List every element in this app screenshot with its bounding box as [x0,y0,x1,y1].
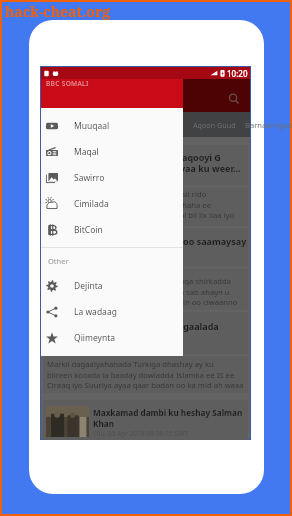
staticText: Soomaaliya oo ka hadashay Waqooyi G [47,151,221,163]
staticText: 10:20 [227,68,248,79]
staticText: Markii dagaalyahanada Turkiga dhashay ay… [47,359,214,369]
button[interactable]: Muuqaal [41,113,183,139]
button[interactable]: Aqoon Guud [186,112,243,137]
staticText: Barnaamijyada [245,120,292,130]
staticText: ciidamada qaranka ee loo dhiibo mushaha … [47,200,211,210]
staticText: Dejinta [74,280,103,292]
button[interactable]: BitCoin [41,217,183,243]
staticText: Dad badan oo ku xanniban magaalada [47,320,219,332]
staticText: Cimilada [74,198,109,210]
staticText: Maxkamad dambi ku heshay Salman [93,407,243,418]
staticText: Hay'adda la dagaalanka musuqmaasuqa shir… [47,276,232,286]
staticText: BitCoin [74,224,103,236]
staticText: La wadaag [74,306,117,318]
staticText: Dowladda oo sheegtay in ay amar ku sii r… [47,189,207,199]
button[interactable]: Caalamka [129,112,186,137]
button[interactable]: Maxkamad dambi ku heshay Salman [43,400,248,440]
staticText: Maqal [74,146,99,158]
staticText: Muuqaal [74,120,110,132]
button[interactable]: Hay'adda la dagaalanka musuqmaasuqa shir… [43,269,248,310]
button[interactable]: Dad badan oo ku xanniban magaalada [43,312,248,354]
staticText: hack-cheat.org [5,2,111,21]
button[interactable]: Markii dagaalyahanada Turkiga dhashay ay… [43,356,248,393]
staticText: Wararka [86,120,116,130]
staticText: albeed: Waa maxay xataallo ayaa ku weer… [47,162,241,174]
button[interactable]: Barnaamijyada [243,112,292,137]
button[interactable]: Maqal [41,139,183,165]
button[interactable]: Soomaaliya oo ka hadashay Waqooyi G [43,145,248,185]
button[interactable]: Search [223,88,245,110]
button[interactable]: Cimilada [41,191,183,217]
button[interactable]: Xaalad degdeg ah oo dhacday oo saamaysay [43,228,248,266]
button[interactable]: Sawirro [41,165,183,191]
button[interactable]: Dejinta [41,273,183,299]
button[interactable]: Wararka [72,112,129,137]
staticText: Qiimeynta [74,332,116,344]
button[interactable]: La wadaag [41,299,183,325]
staticText: Khan [93,418,114,429]
staticText: Thu, 05 Apr 2018 09:38:15 GMT [93,429,189,438]
staticText: Aqoon Guud [193,120,236,130]
staticText: biireen kooxda la baxday dowladda Islamk… [47,370,235,380]
staticText: muddo dheeraad ah ee ay gaaraan hal bil … [47,210,235,220]
staticText: dhaqaalaha dalka qaarkood ay leeyihiin o… [47,297,238,307]
staticText: Other [48,256,69,266]
button[interactable]: Qiimeynta [41,325,183,351]
staticText: Xaalad degdeg ah oo dhacday oo saamaysay [47,235,247,247]
staticText: Sawirro [74,172,105,184]
button[interactable]: Dowladda oo sheegtay in ay amar ku sii r… [43,188,248,226]
staticText: ayaa sheegtay in aysan ku haboonayn sab … [47,287,230,297]
staticText: BBC SOMALI [46,79,89,88]
staticText: Ciraaq iyo Suuriya ayaa qaar badan oo ka… [47,380,244,390]
